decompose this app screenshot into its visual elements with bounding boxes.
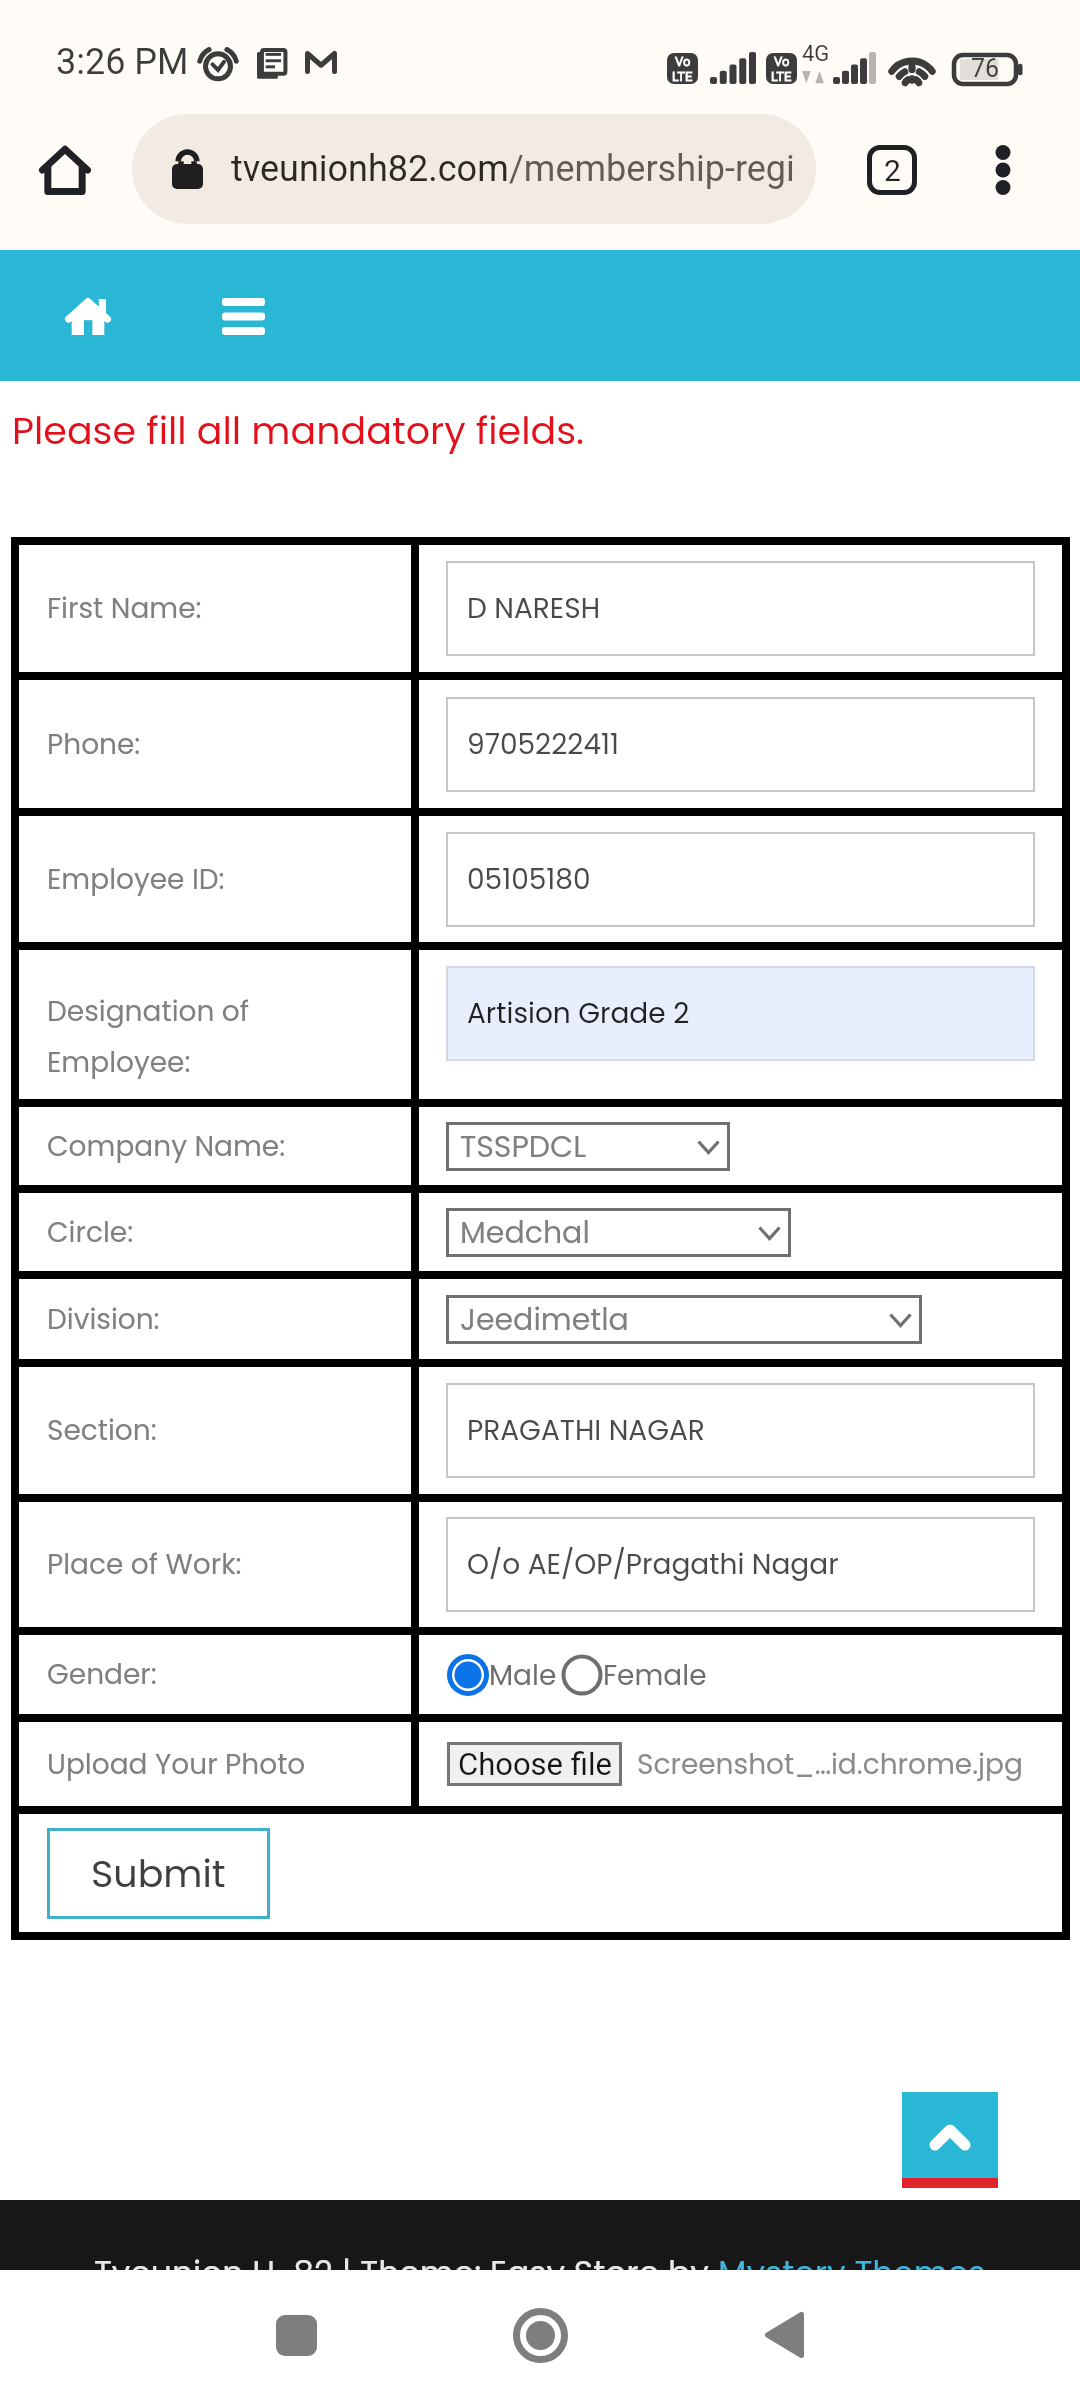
staticText: 3:26 PM bbox=[56, 41, 189, 83]
staticText: Female bbox=[603, 1656, 707, 1695]
staticText: Section: bbox=[47, 1411, 157, 1450]
staticText: Vo bbox=[774, 54, 790, 69]
staticText: 4G bbox=[802, 41, 830, 67]
staticText: Designation of Employee: bbox=[47, 992, 249, 1081]
button[interactable]: O/o AE/OP/Pragathi Nagar bbox=[446, 1517, 1035, 1612]
staticText: Phone: bbox=[47, 725, 141, 764]
staticText: Choose file bbox=[458, 1746, 612, 1782]
staticText: Medchal bbox=[460, 1212, 590, 1254]
button[interactable]: 05105180 bbox=[446, 832, 1035, 927]
staticText: tveunionh82.com bbox=[231, 148, 509, 190]
button[interactable]: Recents bbox=[236, 2275, 356, 2395]
button[interactable]: Back bbox=[724, 2275, 844, 2395]
staticText: 76 bbox=[971, 54, 1000, 83]
staticText: Vo bbox=[675, 54, 691, 69]
staticText: Please fill all mandatory fields. bbox=[12, 404, 585, 457]
staticText: Artision Grade 2 bbox=[467, 994, 690, 1033]
button[interactable]: Submit bbox=[47, 1828, 270, 1919]
staticText: PRAGATHI NAGAR bbox=[467, 1411, 705, 1450]
staticText: 9705222411 bbox=[467, 725, 619, 764]
button[interactable]: D NARESH bbox=[446, 561, 1035, 656]
staticText: Tveunion H-82 | Theme: Easy Store by bbox=[94, 2250, 718, 2296]
button[interactable]: Home bbox=[480, 2275, 600, 2395]
button[interactable]: Artision Grade 2 bbox=[446, 966, 1035, 1061]
staticText: /membership-regi bbox=[509, 148, 795, 190]
button[interactable]: Home bbox=[48, 276, 128, 356]
staticText: 05105180 bbox=[467, 860, 591, 899]
staticText: Employee ID: bbox=[47, 860, 225, 899]
staticText: Mystery Themes bbox=[718, 2250, 986, 2296]
button[interactable]: PRAGATHI NAGAR bbox=[446, 1383, 1035, 1478]
staticText: O/o AE/OP/Pragathi Nagar bbox=[467, 1545, 839, 1584]
button[interactable]: Female bbox=[561, 1654, 603, 1696]
staticText: Company Name: bbox=[47, 1127, 286, 1166]
button[interactable]: 9705222411 bbox=[446, 697, 1035, 792]
staticText: LTE bbox=[771, 69, 792, 84]
staticText: Upload Your Photo bbox=[47, 1745, 306, 1784]
staticText: LTE bbox=[672, 69, 693, 84]
staticText: Jeedimetla bbox=[460, 1299, 629, 1341]
button[interactable]: Choose file bbox=[447, 1742, 622, 1786]
button[interactable]: Home bbox=[25, 130, 105, 210]
staticText: Division: bbox=[47, 1300, 160, 1339]
staticText: Male bbox=[489, 1656, 557, 1695]
staticText: 2 bbox=[884, 153, 901, 188]
staticText: Place of Work: bbox=[47, 1545, 242, 1584]
staticText: Gender: bbox=[47, 1655, 157, 1694]
staticText: Screenshot_…id.chrome.jpg bbox=[637, 1745, 1023, 1784]
staticText: Submit bbox=[91, 1847, 226, 1900]
staticText: Circle: bbox=[47, 1213, 134, 1252]
button[interactable]: Tabs bbox=[853, 131, 931, 209]
button[interactable]: Medchal bbox=[446, 1208, 791, 1257]
button[interactable]: tveunionh82.com bbox=[132, 114, 816, 224]
staticText: TSSPDCL bbox=[460, 1126, 587, 1168]
staticText: D NARESH bbox=[467, 589, 601, 628]
button[interactable]: Male, selected bbox=[447, 1654, 489, 1696]
button[interactable]: Jeedimetla bbox=[446, 1295, 922, 1344]
button[interactable]: Scroll to top bbox=[902, 2092, 998, 2188]
button[interactable]: Menu bbox=[203, 276, 283, 356]
staticText: First Name: bbox=[47, 589, 202, 628]
button[interactable]: More options bbox=[963, 130, 1043, 210]
button[interactable]: TSSPDCL bbox=[446, 1122, 730, 1171]
